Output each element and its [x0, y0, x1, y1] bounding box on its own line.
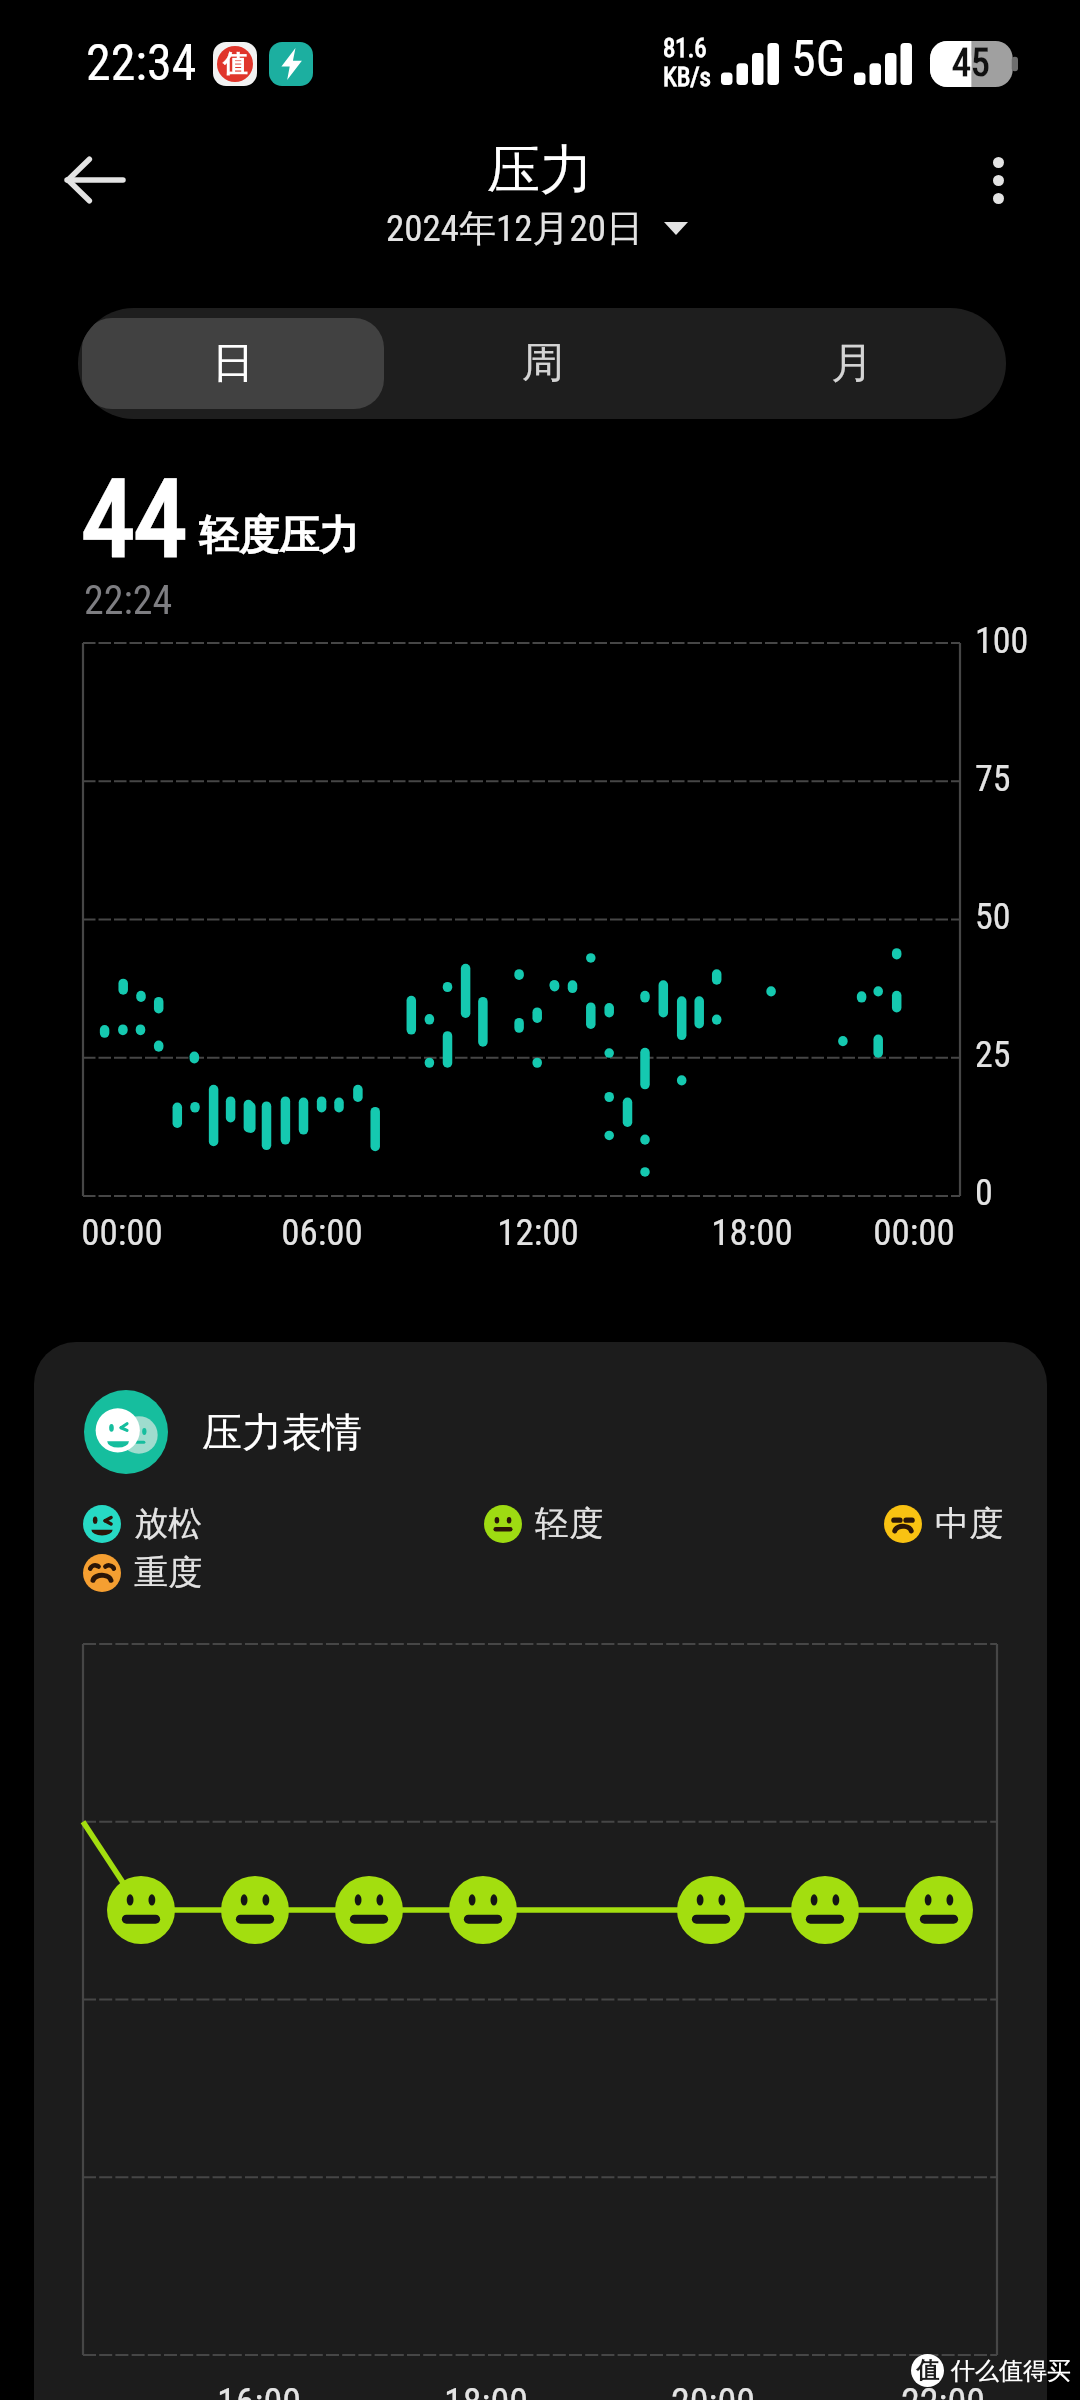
staticText: 周	[522, 337, 564, 390]
staticText: 22:34	[86, 34, 197, 93]
staticText: 22:00	[813, 2381, 1073, 2400]
staticText: 06:00	[192, 1211, 452, 1254]
staticText: 22:24	[84, 577, 173, 624]
staticText: 45	[952, 41, 990, 86]
staticText: 81.6	[663, 34, 707, 63]
staticText: 18:00	[622, 1211, 882, 1254]
staticText: 2024年12月20日	[386, 205, 644, 252]
staticText: 25	[975, 1034, 1011, 1076]
staticText: 0	[975, 1172, 993, 1214]
staticText: 轻度压力	[199, 510, 359, 560]
staticText: 5G	[791, 30, 846, 89]
staticText: 12:00	[408, 1211, 668, 1254]
staticText: 放松	[134, 1502, 202, 1545]
staticText: 44	[82, 457, 187, 581]
staticText: 18:00	[356, 2381, 616, 2400]
staticText: 压力表情	[202, 1407, 362, 1457]
staticText: 日	[212, 337, 254, 390]
staticText: 轻度	[535, 1502, 603, 1545]
staticText: 月	[831, 337, 873, 390]
staticText: 压力	[410, 137, 670, 204]
staticText: 重度	[134, 1551, 202, 1594]
staticText: 什么值得买	[951, 2356, 1071, 2386]
staticText: 中度	[935, 1502, 1003, 1545]
button[interactable]: Back	[54, 140, 134, 220]
staticText: 00:00	[0, 1211, 252, 1254]
staticText: 50	[975, 896, 1011, 938]
button[interactable]: More options	[958, 140, 1038, 220]
staticText: 16:00	[129, 2381, 389, 2400]
staticText: KB/s	[663, 63, 711, 92]
staticText: 值	[916, 2356, 939, 2385]
staticText: 100	[975, 620, 1029, 662]
staticText: 值	[223, 49, 247, 79]
button[interactable]: 月	[697, 318, 1006, 409]
staticText: 75	[975, 758, 1011, 800]
button[interactable]: 2024年12月20日	[386, 205, 688, 252]
button[interactable]: 日	[82, 318, 384, 409]
staticText: 20:00	[583, 2381, 843, 2400]
staticText: 00:00	[784, 1211, 1044, 1254]
button[interactable]: 周	[388, 318, 697, 409]
button[interactable]: 压力表情 card	[34, 1342, 1047, 2400]
